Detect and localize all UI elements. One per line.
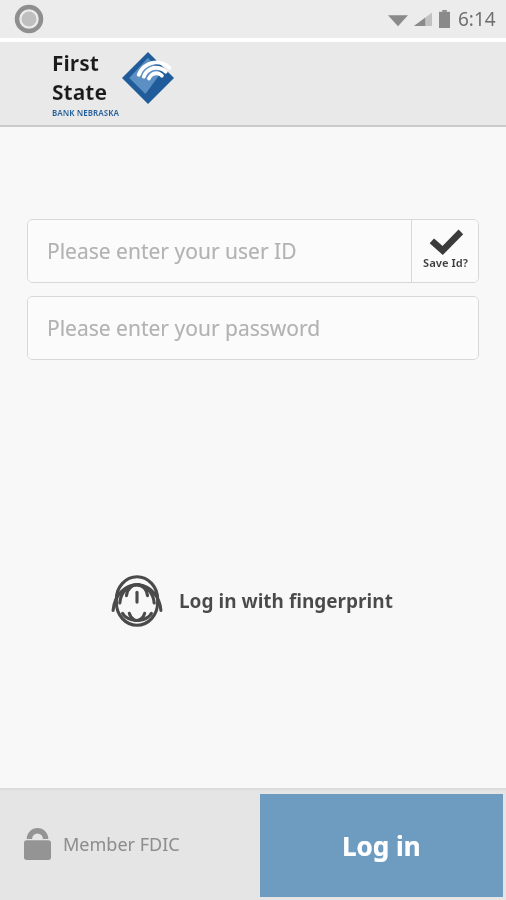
button[interactable]: Please enter your user ID (27, 219, 411, 283)
other: Fingerprint (113, 574, 161, 628)
staticText: Please enter your password (47, 314, 321, 343)
staticText: Member FDIC (63, 832, 180, 857)
staticText: State (52, 78, 107, 107)
staticText: First (52, 49, 99, 78)
button[interactable]: Please enter your password (27, 296, 479, 360)
staticText: Please enter your user ID (47, 237, 297, 266)
other: Secure (24, 828, 51, 860)
staticText: Log in (342, 828, 421, 863)
button[interactable]: Fingerprint (105, 568, 401, 634)
staticText: 6:14 (458, 6, 496, 32)
staticText: Log in with fingerprint (179, 588, 393, 614)
button[interactable]: Save Id? (412, 219, 479, 283)
button[interactable]: Secure (24, 828, 180, 860)
staticText: Save Id? (423, 255, 468, 270)
button[interactable]: Log in (260, 794, 503, 897)
staticText: BANK NEBRASKA (52, 107, 120, 118)
